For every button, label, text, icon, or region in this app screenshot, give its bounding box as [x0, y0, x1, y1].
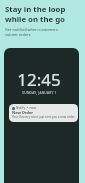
staticText: SUNDAY, JANUARY 1 — [22, 91, 57, 95]
staticText: Get notified when customers submit order… — [5, 27, 58, 37]
staticText: New Order — [12, 110, 34, 115]
staticText: Stay in the loop while on the go — [5, 4, 66, 24]
staticText: Notify • now — [16, 106, 36, 110]
staticText: 12:45 — [17, 68, 61, 91]
button[interactable]: App icon — [9, 104, 78, 122]
other: App icon — [12, 107, 15, 110]
staticText: Your Grocery store just sent you a new o… — [12, 115, 75, 119]
